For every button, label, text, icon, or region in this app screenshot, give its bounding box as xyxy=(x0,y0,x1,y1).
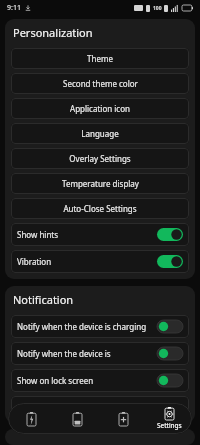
button[interactable]: Notify when battery overheats xyxy=(11,396,189,417)
staticText: Show hints xyxy=(17,229,154,240)
button[interactable]: Application icon xyxy=(11,98,189,119)
button[interactable]: Level xyxy=(54,403,100,434)
staticText: Temperature display xyxy=(62,178,139,189)
button[interactable]: Charging xyxy=(8,403,54,434)
staticText: Notify when the device is discharging xyxy=(17,348,154,359)
button[interactable]: Language xyxy=(11,123,189,144)
staticText: Vibration xyxy=(17,256,154,267)
staticText: Notify when the device is charging xyxy=(17,321,154,332)
staticText: Notification xyxy=(13,292,74,307)
button[interactable]: Notify when the device is charging xyxy=(11,315,189,338)
button[interactable]: Settings xyxy=(146,403,192,434)
button[interactable]: Theme xyxy=(11,48,189,69)
staticText: Auto-Close Settings xyxy=(63,203,137,214)
staticText: Overlay Settings xyxy=(69,153,131,164)
button[interactable]: Notify when the device is discharging xyxy=(11,342,189,365)
button[interactable]: Vibration xyxy=(11,250,189,273)
button[interactable]: Second theme color xyxy=(11,73,189,94)
button[interactable]: Overlay Settings xyxy=(11,148,189,169)
button[interactable]: Temperature display xyxy=(11,173,189,194)
staticText: Notify when battery overheats xyxy=(43,401,157,412)
button[interactable]: Auto-Close Settings xyxy=(11,198,189,219)
staticText: Second theme color xyxy=(63,78,138,89)
button[interactable]: Show on lock screen xyxy=(11,369,189,392)
staticText: 9:11 xyxy=(7,3,21,13)
button[interactable]: Health xyxy=(100,403,146,434)
staticText: 100 xyxy=(153,5,162,12)
staticText: Theme xyxy=(87,53,113,64)
staticText: Language xyxy=(81,128,119,139)
button[interactable]: Show hints xyxy=(11,223,189,246)
staticText: Application icon xyxy=(70,103,130,114)
staticText: Personalization xyxy=(13,25,93,40)
staticText: Settings xyxy=(157,421,182,430)
staticText: Show on lock screen xyxy=(17,375,154,386)
